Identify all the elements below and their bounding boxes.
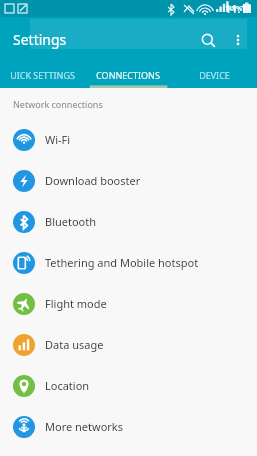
- staticText: CONNECTIONS: [96, 69, 160, 81]
- staticText: Wi-Fi: [45, 132, 71, 147]
- staticText: Settings: [13, 30, 67, 49]
- staticText: Download booster: [45, 173, 141, 188]
- button[interactable]: Download booster: [0, 160, 257, 201]
- staticText: More networks: [45, 419, 123, 434]
- staticText: 48%: [228, 4, 243, 14]
- staticText: Location: [45, 378, 90, 393]
- button[interactable]: More networks: [0, 406, 257, 447]
- button[interactable]: DEVICE: [171, 62, 257, 88]
- staticText: Flight mode: [45, 296, 107, 311]
- button[interactable]: UICK SETTINGS: [0, 62, 85, 88]
- button[interactable]: Location: [0, 365, 257, 406]
- staticText: Tethering and Mobile hotspot: [45, 255, 199, 270]
- button[interactable]: Search: [195, 27, 221, 53]
- button[interactable]: More options: [225, 27, 251, 53]
- staticText: 11:11: [225, 1, 254, 16]
- staticText: UICK SETTINGS: [10, 69, 75, 81]
- button[interactable]: Data usage: [0, 324, 257, 365]
- button[interactable]: Flight mode: [0, 283, 257, 324]
- staticText: Network connections: [13, 98, 103, 110]
- staticText: Bluetooth: [45, 214, 97, 229]
- button[interactable]: Bluetooth: [0, 201, 257, 242]
- button[interactable]: CONNECTIONS: [85, 62, 171, 88]
- button[interactable]: Tethering and Mobile hotspot: [0, 242, 257, 283]
- staticText: DEVICE: [199, 69, 230, 81]
- staticText: Data usage: [45, 337, 104, 352]
- button[interactable]: Wi-Fi: [0, 119, 257, 160]
